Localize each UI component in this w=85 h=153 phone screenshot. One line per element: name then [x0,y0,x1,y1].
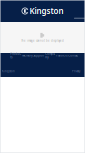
button[interactable]: Contact [67,54,79,57]
staticText: Support [33,54,44,57]
button[interactable]: Kingston [21,6,63,16]
button[interactable]: Memory [21,54,33,57]
button[interactable]: Privacy [72,69,80,73]
staticText: Partners [56,54,67,57]
staticText: Contact [68,54,78,57]
staticText: Products [10,52,21,59]
button[interactable]: Search [74,18,85,19]
button[interactable]: Company [44,54,56,57]
staticText: Kingston [29,6,63,16]
staticText: Kingston [2,69,15,73]
staticText: Privacy [72,69,80,73]
button[interactable]: Products [10,54,21,57]
button[interactable]: Support [33,54,44,57]
staticText: The image cannot be displayed [21,39,64,42]
staticText: Memory [22,54,32,57]
button[interactable]: Partners [56,54,67,57]
staticText: Company [45,52,55,59]
